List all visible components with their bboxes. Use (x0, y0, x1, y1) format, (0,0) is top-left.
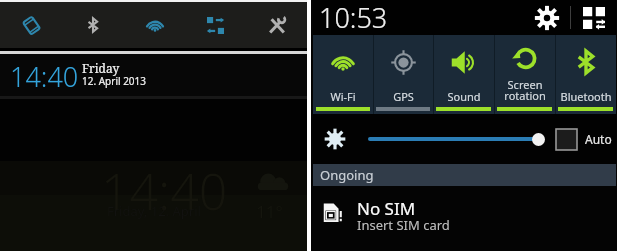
button[interactable]: Auto rotate (0, 2, 62, 48)
staticText: Wi-Fi (330, 89, 356, 104)
staticText: 10:53 (319, 0, 388, 34)
staticText: GPS (393, 89, 414, 104)
button[interactable]: Screen rotation (494, 35, 555, 114)
staticText: Auto (585, 131, 612, 147)
button[interactable]: No SIM (313, 186, 616, 251)
staticText: Insert SIM card (357, 216, 450, 234)
staticText: Sound (447, 89, 481, 104)
button[interactable]: Settings (535, 6, 559, 30)
staticText: 14:40 (10, 58, 79, 95)
staticText: 12. April 2013 (82, 74, 147, 88)
staticText: Screen rotation (504, 77, 546, 104)
staticText: Ongoing (320, 166, 374, 184)
button[interactable]: Bluetooth (62, 2, 124, 48)
staticText: 14:40 (101, 157, 228, 225)
staticText: Bluetooth (560, 89, 612, 104)
button[interactable]: Quick settings (583, 7, 605, 29)
button[interactable]: GPS (373, 35, 433, 114)
button[interactable]: Settings (246, 2, 307, 48)
button[interactable]: Mobile data (185, 2, 246, 48)
staticText: Friday (82, 60, 120, 76)
staticText: No SIM (357, 197, 416, 220)
button[interactable]: Bluetooth (555, 35, 616, 114)
button[interactable]: Sound (433, 35, 494, 114)
button[interactable]: Auto brightness (556, 129, 577, 150)
button[interactable]: Wi-Fi (313, 35, 373, 114)
button[interactable]: Wi-Fi (124, 2, 185, 48)
